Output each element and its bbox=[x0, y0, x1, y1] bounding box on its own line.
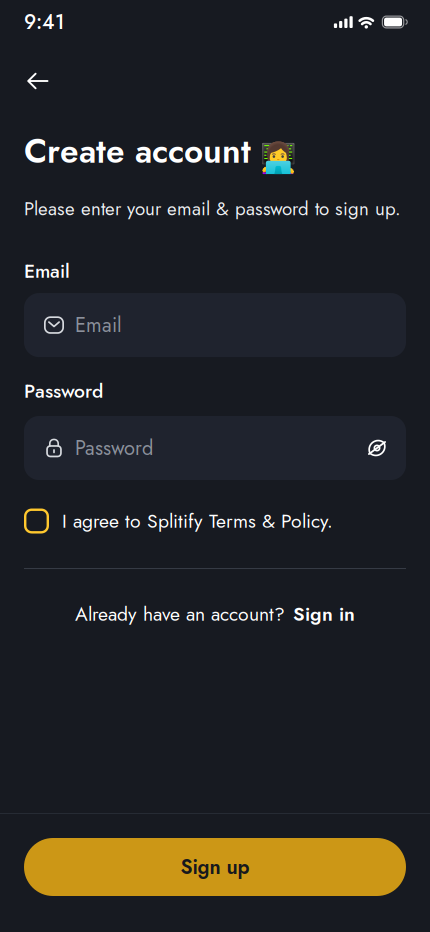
staticText: Email bbox=[75, 311, 122, 339]
staticText: Email bbox=[24, 257, 70, 285]
staticText: Create account bbox=[24, 127, 251, 175]
button[interactable]: Back bbox=[27, 61, 67, 101]
button[interactable]: Already have an account? bbox=[24, 594, 406, 634]
button[interactable]: Sign up bbox=[24, 838, 406, 896]
staticText: 👩‍💻 bbox=[260, 142, 297, 175]
staticText: I agree to Splitify Terms & Policy. bbox=[62, 507, 333, 535]
button[interactable]: I agree to Splitify Terms & Policy. bbox=[24, 500, 406, 542]
staticText: Password bbox=[75, 434, 153, 462]
staticText: Password bbox=[24, 377, 103, 405]
staticText: Already have an account? bbox=[75, 600, 285, 628]
staticText: Sign up bbox=[180, 852, 249, 881]
button[interactable]: Show password bbox=[366, 437, 388, 459]
staticText: Sign in bbox=[293, 600, 355, 628]
staticText: 9:41 bbox=[24, 7, 64, 36]
staticText: Please enter your email & password to si… bbox=[24, 195, 401, 222]
